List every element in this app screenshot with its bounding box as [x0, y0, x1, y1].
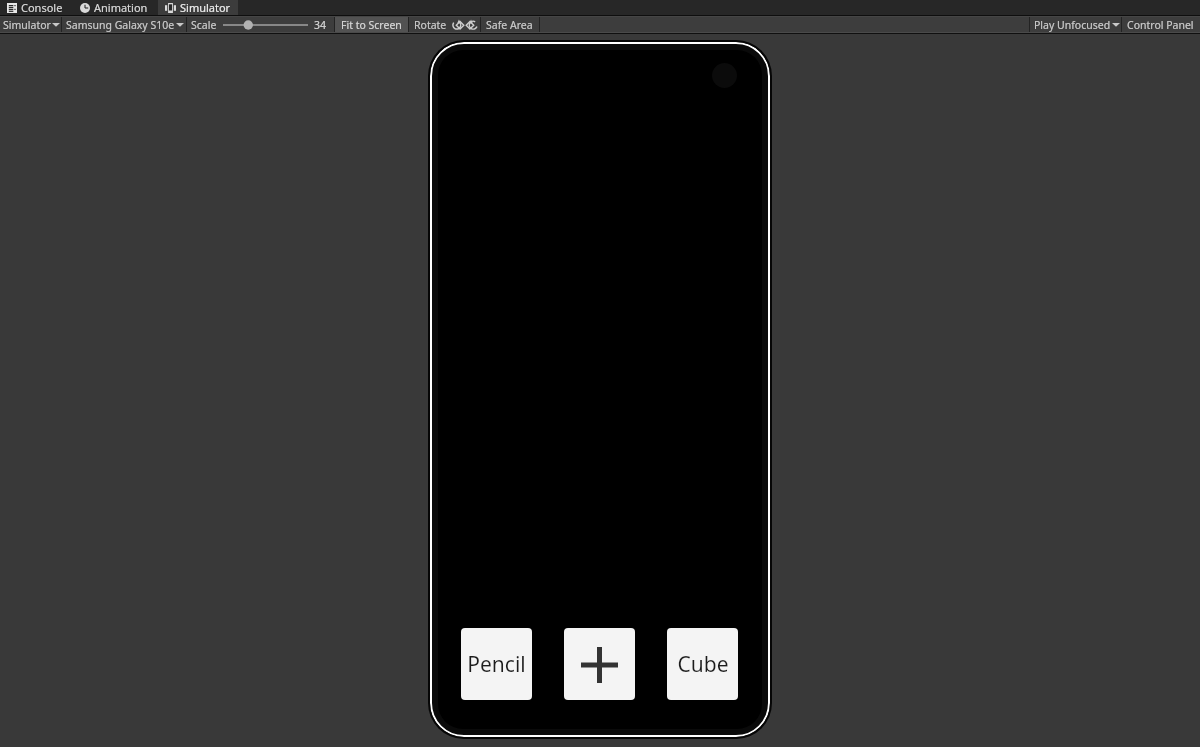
staticText: Fit to Screen: [341, 18, 402, 32]
button[interactable]: Add: [564, 628, 635, 700]
staticText: Cube: [677, 650, 729, 679]
staticText: Animation: [94, 0, 148, 15]
staticText: Samsung Galaxy S10e: [66, 18, 175, 32]
button[interactable]: Rotate: [409, 17, 452, 32]
other: Rotate left: [466, 18, 478, 31]
staticText: Simulator: [180, 0, 231, 15]
staticText: Scale: [191, 18, 217, 32]
button[interactable]: Simulator: [0, 17, 61, 32]
staticText: Play Unfocused: [1034, 18, 1111, 32]
staticText: 34: [314, 18, 327, 32]
staticText: Pencil: [467, 650, 526, 679]
button[interactable]: Control Panel: [1122, 17, 1200, 32]
staticText: Simulator: [3, 18, 51, 32]
button[interactable]: Rotate clockwise: [452, 17, 464, 32]
button[interactable]: Safe Area: [481, 17, 539, 32]
button[interactable]: Play Unfocused: [1030, 17, 1121, 32]
button[interactable]: Animation: [73, 0, 158, 15]
button[interactable]: Fit to Screen: [335, 17, 408, 32]
button[interactable]: Simulator: [158, 0, 238, 15]
staticText: Rotate: [414, 18, 447, 32]
button[interactable]: Cube: [667, 628, 738, 700]
staticText: Safe Area: [486, 18, 533, 32]
button[interactable]: Rotate counter-clockwise: [466, 17, 478, 32]
staticText: Control Panel: [1127, 18, 1194, 32]
button[interactable]: Console: [0, 0, 73, 15]
other: Rotate right: [452, 18, 464, 31]
button[interactable]: Pencil: [461, 628, 532, 700]
staticText: Console: [21, 0, 63, 15]
button[interactable]: Samsung Galaxy S10e: [62, 17, 186, 32]
